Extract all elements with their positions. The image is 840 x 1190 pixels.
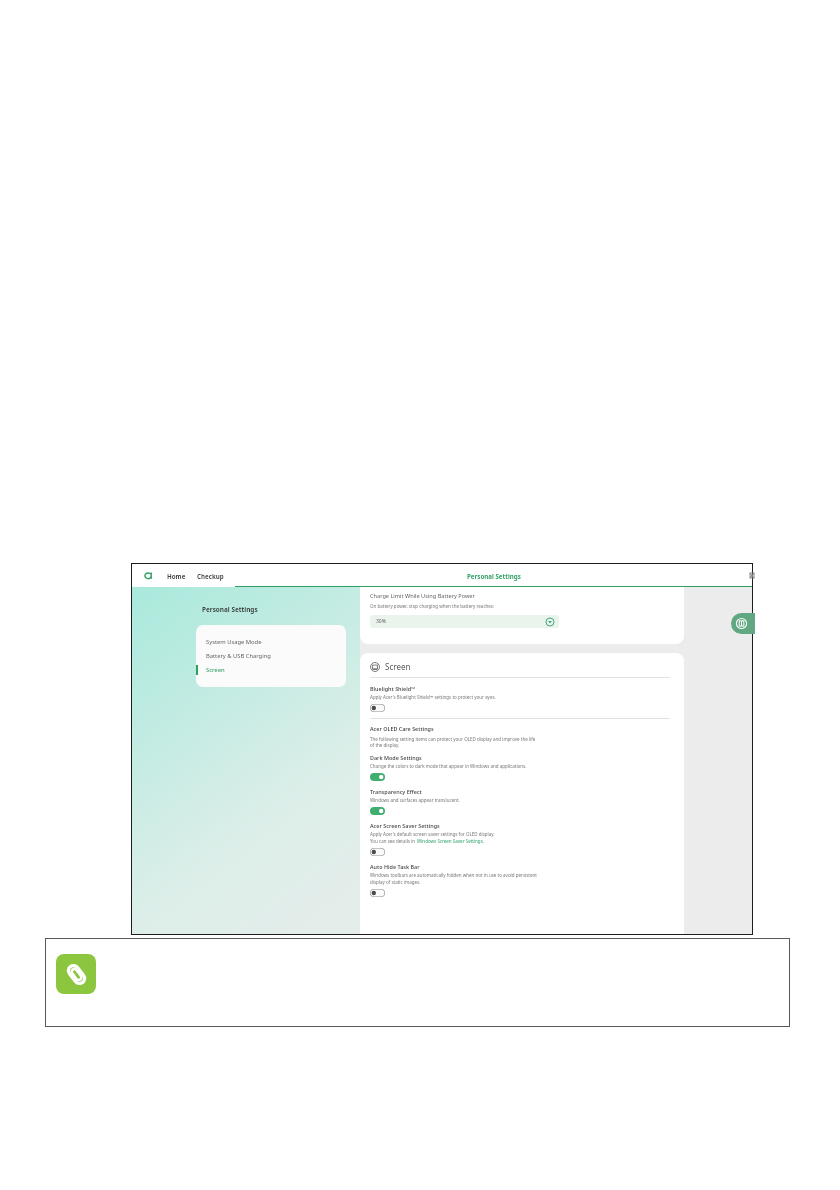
staticText: Home: [167, 572, 186, 580]
staticText: Checkup: [197, 572, 224, 580]
button[interactable]: Transparency Effect: [370, 807, 385, 815]
staticText: Transparency Effect: [370, 788, 422, 795]
staticText: 30%: [376, 618, 386, 625]
staticText: System Usage Mode: [206, 638, 262, 646]
staticText: On battery power, stop charging when the…: [370, 603, 495, 609]
button[interactable]: Bluelight Shield™: [370, 704, 385, 712]
button[interactable]: System Usage Mode: [196, 635, 346, 649]
staticText: Acer Screen Saver Settings: [370, 822, 440, 829]
button[interactable]: Auto Hide Task Bar: [370, 889, 385, 897]
staticText: Windows toolbars are automatically hidde…: [370, 872, 537, 878]
button[interactable]: Note: [56, 954, 96, 994]
button[interactable]: 30%: [370, 615, 559, 628]
staticText: Acer OLED Care Settings: [370, 725, 434, 732]
staticText: Apply Acer's Bluelight Shield™ settings …: [370, 694, 496, 700]
staticText: Screen: [206, 666, 225, 674]
staticText: Battery & USB Charging: [206, 652, 271, 660]
button[interactable]: Acer Screen Saver Settings: [370, 848, 385, 856]
button[interactable]: Quick panel: [731, 613, 755, 634]
staticText: The following setting items can protect …: [370, 736, 536, 742]
staticText: Personal Settings: [467, 572, 521, 580]
staticText: Bluelight Shield™: [370, 685, 416, 692]
staticText: You can see details in: [370, 838, 417, 844]
button[interactable]: Dark Mode Settings: [370, 773, 385, 781]
button[interactable]: Personal Settings: [235, 564, 752, 587]
button[interactable]: Battery & USB Charging: [196, 649, 346, 663]
staticText: of the display.: [370, 742, 400, 748]
staticText: Personal Settings: [202, 605, 258, 614]
staticText: Windows and surfaces appear translucent.: [370, 797, 460, 803]
button[interactable]: Screen: [196, 663, 346, 677]
staticText: Dark Mode Settings: [370, 754, 422, 761]
staticText: Change the colors to dark mode that appe…: [370, 763, 527, 769]
staticText: Apply Acer's default screen saver settin…: [370, 831, 495, 837]
button[interactable]: Home: [167, 564, 186, 587]
staticText: Auto Hide Task Bar: [370, 863, 420, 870]
staticText: Screen: [385, 661, 411, 672]
button[interactable]: Checkup: [197, 564, 224, 587]
staticText: display of static images.: [370, 879, 421, 885]
staticText: Windows Screen Saver Settings.: [417, 838, 484, 844]
staticText: Charge Limit While Using Battery Power: [370, 592, 475, 600]
